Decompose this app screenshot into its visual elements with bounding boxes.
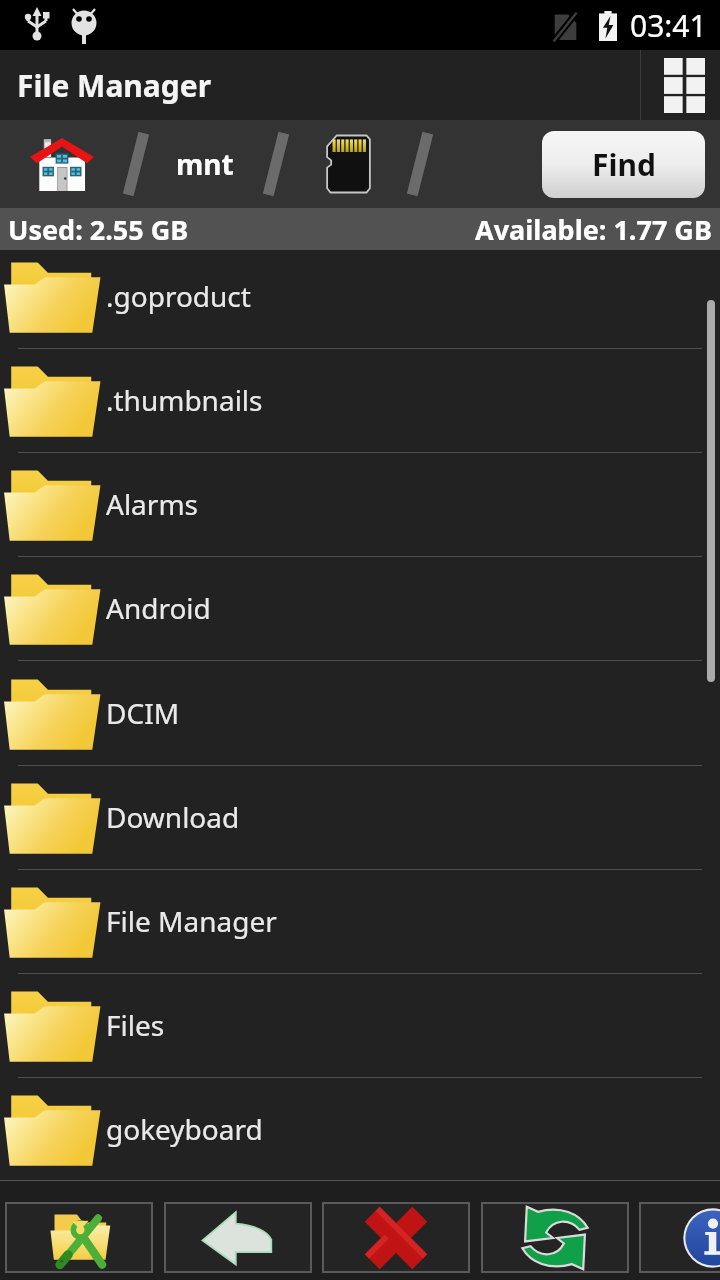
button[interactable]: .thumbnails (0, 348, 720, 452)
button[interactable]: Files (0, 973, 720, 1077)
button[interactable]: DCIM (0, 661, 720, 765)
button[interactable]: Info (639, 1202, 720, 1273)
staticText: .thumbnails (106, 381, 263, 419)
button[interactable]: Alarms (0, 452, 720, 556)
button[interactable]: Delete (322, 1202, 470, 1273)
staticText: Files (106, 1006, 165, 1044)
button[interactable]: mnt (165, 120, 245, 208)
staticText: Used: 2.55 GB (8, 211, 189, 248)
staticText: Alarms (106, 485, 198, 523)
button[interactable]: .goproduct (0, 244, 720, 348)
staticText: mnt (176, 145, 234, 183)
button[interactable]: Grid view (641, 50, 720, 120)
button[interactable]: Tools (5, 1202, 153, 1273)
staticText: File Manager (17, 65, 212, 106)
staticText: Available: 1.77 GB (475, 211, 712, 248)
button[interactable]: Download (0, 765, 720, 869)
staticText: gokeyboard (106, 1110, 263, 1148)
button[interactable]: Back (164, 1202, 312, 1273)
staticText: 03:41 (630, 5, 707, 46)
button[interactable]: Home (22, 120, 102, 208)
button[interactable]: Find (542, 131, 705, 198)
staticText: Android (106, 589, 211, 627)
button[interactable]: Refresh (481, 1202, 629, 1273)
staticText: DCIM (106, 694, 180, 732)
button[interactable]: File Manager (0, 869, 720, 973)
button[interactable]: Android (0, 556, 720, 660)
button[interactable]: gokeyboard (0, 1077, 720, 1181)
staticText: File Manager (106, 902, 277, 940)
staticText: Download (106, 798, 240, 836)
button[interactable]: SD card (308, 120, 388, 208)
staticText: Find (592, 144, 656, 185)
staticText: .goproduct (106, 277, 251, 315)
